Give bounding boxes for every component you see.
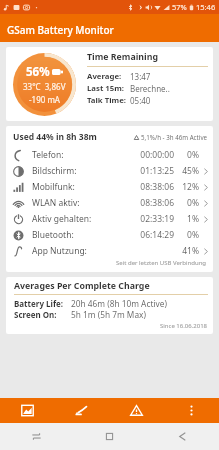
staticText: 02:33:19 <box>138 213 174 225</box>
staticText: 08:38:06 <box>138 181 174 193</box>
button[interactable]: Mobilfunk: <box>6 179 213 195</box>
staticText: Averages Per Complete Charge <box>14 280 150 292</box>
staticText: Bildschirm: <box>32 165 77 177</box>
staticText: App Nutzung: <box>32 245 87 257</box>
button[interactable]: Telefon: <box>6 147 213 163</box>
staticText: GSam Battery Monitor <box>7 23 114 37</box>
button[interactable]: Bildschirm: <box>6 163 213 179</box>
staticText: 15:46 <box>196 2 216 12</box>
staticText: 57% <box>172 2 187 12</box>
button[interactable]: More options <box>164 398 219 423</box>
staticText: Mobilfunk: <box>32 181 75 193</box>
button[interactable]: Alerts <box>109 398 164 423</box>
button[interactable]: Recent apps <box>0 423 73 450</box>
staticText: Berechne.. <box>130 83 170 94</box>
staticText: 5h 1m (5h 7m Max) <box>71 309 146 320</box>
staticText: 20h 46m (8h 10m Active) <box>71 298 167 309</box>
staticText: Screen On: <box>14 309 57 320</box>
button[interactable]: WLAN aktiv: <box>6 195 213 211</box>
staticText: Average: <box>87 71 122 82</box>
staticText: 45% <box>180 165 199 177</box>
staticText: 56% <box>26 64 50 80</box>
staticText: WLAN aktiv: <box>32 197 80 209</box>
button[interactable]: Aktiv gehalten: <box>6 211 213 227</box>
staticText: Last 15m: <box>87 83 125 94</box>
staticText: Telefon: <box>32 149 64 161</box>
staticText: 41% <box>180 245 199 257</box>
staticText: Aktiv gehalten: <box>32 213 92 225</box>
button[interactable]: Back <box>146 423 219 450</box>
staticText: 08:38:06 <box>138 197 174 209</box>
staticText: 0% <box>180 149 199 161</box>
staticText: Battery Life: <box>14 298 64 309</box>
staticText: 12% <box>180 181 199 193</box>
staticText: -190 mA <box>29 94 60 105</box>
staticText: 0% <box>180 197 199 209</box>
staticText: 13:47 <box>130 71 151 82</box>
staticText: Talk Time: <box>87 95 127 106</box>
button[interactable]: App usage <box>54 398 109 423</box>
button[interactable]: Home <box>73 423 146 450</box>
staticText: 06:14:29 <box>138 229 174 241</box>
button[interactable]: App Nutzung: <box>6 243 213 259</box>
staticText: Bluetooth: <box>32 229 74 241</box>
staticText: Time Remaining <box>87 51 158 63</box>
staticText: 33°C 3,86V <box>23 81 66 92</box>
staticText: 05:40 <box>130 95 151 106</box>
button[interactable]: Battery charts <box>0 398 54 423</box>
staticText: 0% <box>180 229 199 241</box>
button[interactable]: Bluetooth: <box>6 227 213 243</box>
staticText: 01:13:25 <box>138 165 174 177</box>
staticText: 5,1%/h - 3h 46m Active <box>141 133 208 141</box>
staticText: Used 44% in 8h 38m <box>13 131 97 143</box>
staticText: 1% <box>180 213 199 225</box>
staticText: Since 16.06.2018 <box>160 322 208 330</box>
staticText: 00:00:00 <box>138 149 174 161</box>
staticText: Seit der letzten USB Verbindung <box>116 259 207 267</box>
